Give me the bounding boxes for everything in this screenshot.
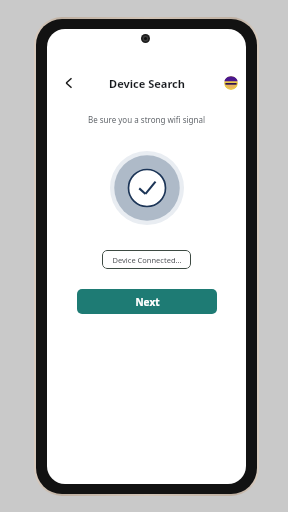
button[interactable]: Back	[57, 71, 81, 95]
staticText: Device Connected...	[112, 255, 182, 265]
staticText: Device Search	[109, 76, 185, 91]
button[interactable]: Device Connected...	[102, 250, 191, 269]
staticText: Be sure you a strong wifi signal	[47, 114, 246, 125]
button[interactable]: Profile	[224, 76, 238, 90]
staticText: Next	[135, 295, 160, 309]
button[interactable]: Next	[77, 289, 217, 314]
